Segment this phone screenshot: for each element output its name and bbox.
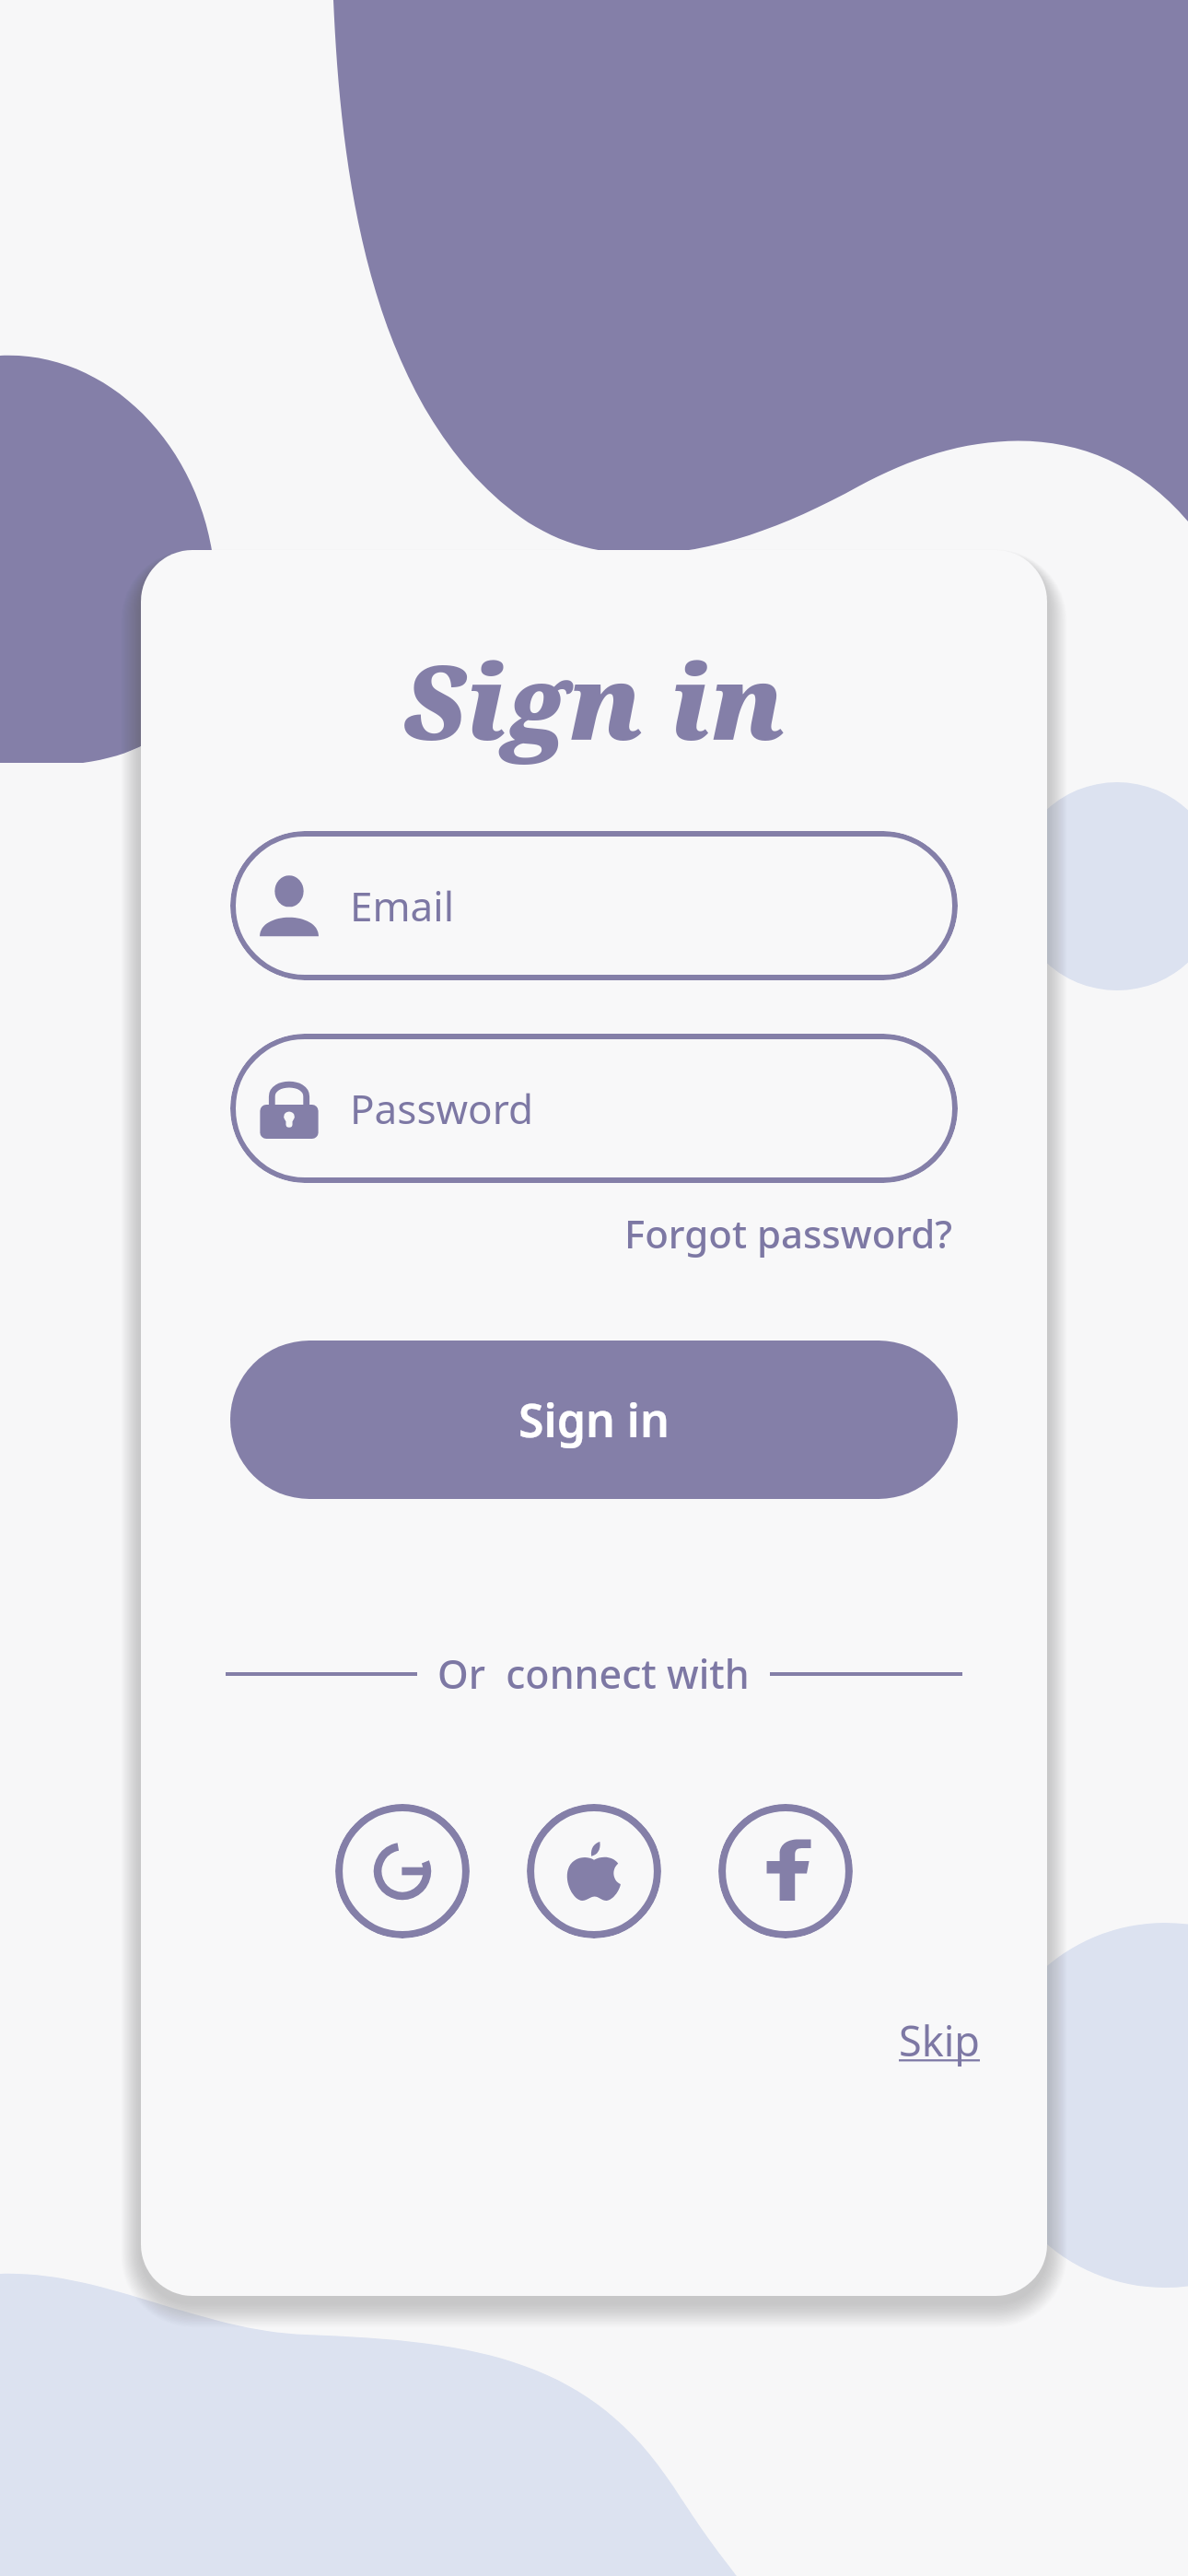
staticText: Forgot password? <box>624 1207 953 1259</box>
button[interactable]: Email <box>230 831 958 980</box>
staticText: Email <box>350 878 454 933</box>
button[interactable]: Password <box>230 1034 958 1183</box>
staticText: Sign in <box>402 629 786 770</box>
button[interactable]: Skip <box>891 2007 988 2074</box>
staticText: Sign in <box>518 1388 670 1451</box>
staticText: Password <box>350 1081 534 1136</box>
button[interactable]: Sign in with Google <box>335 1804 470 1938</box>
button[interactable]: Sign in with Apple <box>527 1804 661 1938</box>
button[interactable]: Sign in with Facebook <box>718 1804 853 1938</box>
button[interactable]: Sign in <box>230 1341 958 1499</box>
staticText: Skip <box>899 2012 981 2068</box>
staticText: Or connect with <box>437 1646 750 1701</box>
button[interactable]: Forgot password? <box>619 1200 959 1267</box>
